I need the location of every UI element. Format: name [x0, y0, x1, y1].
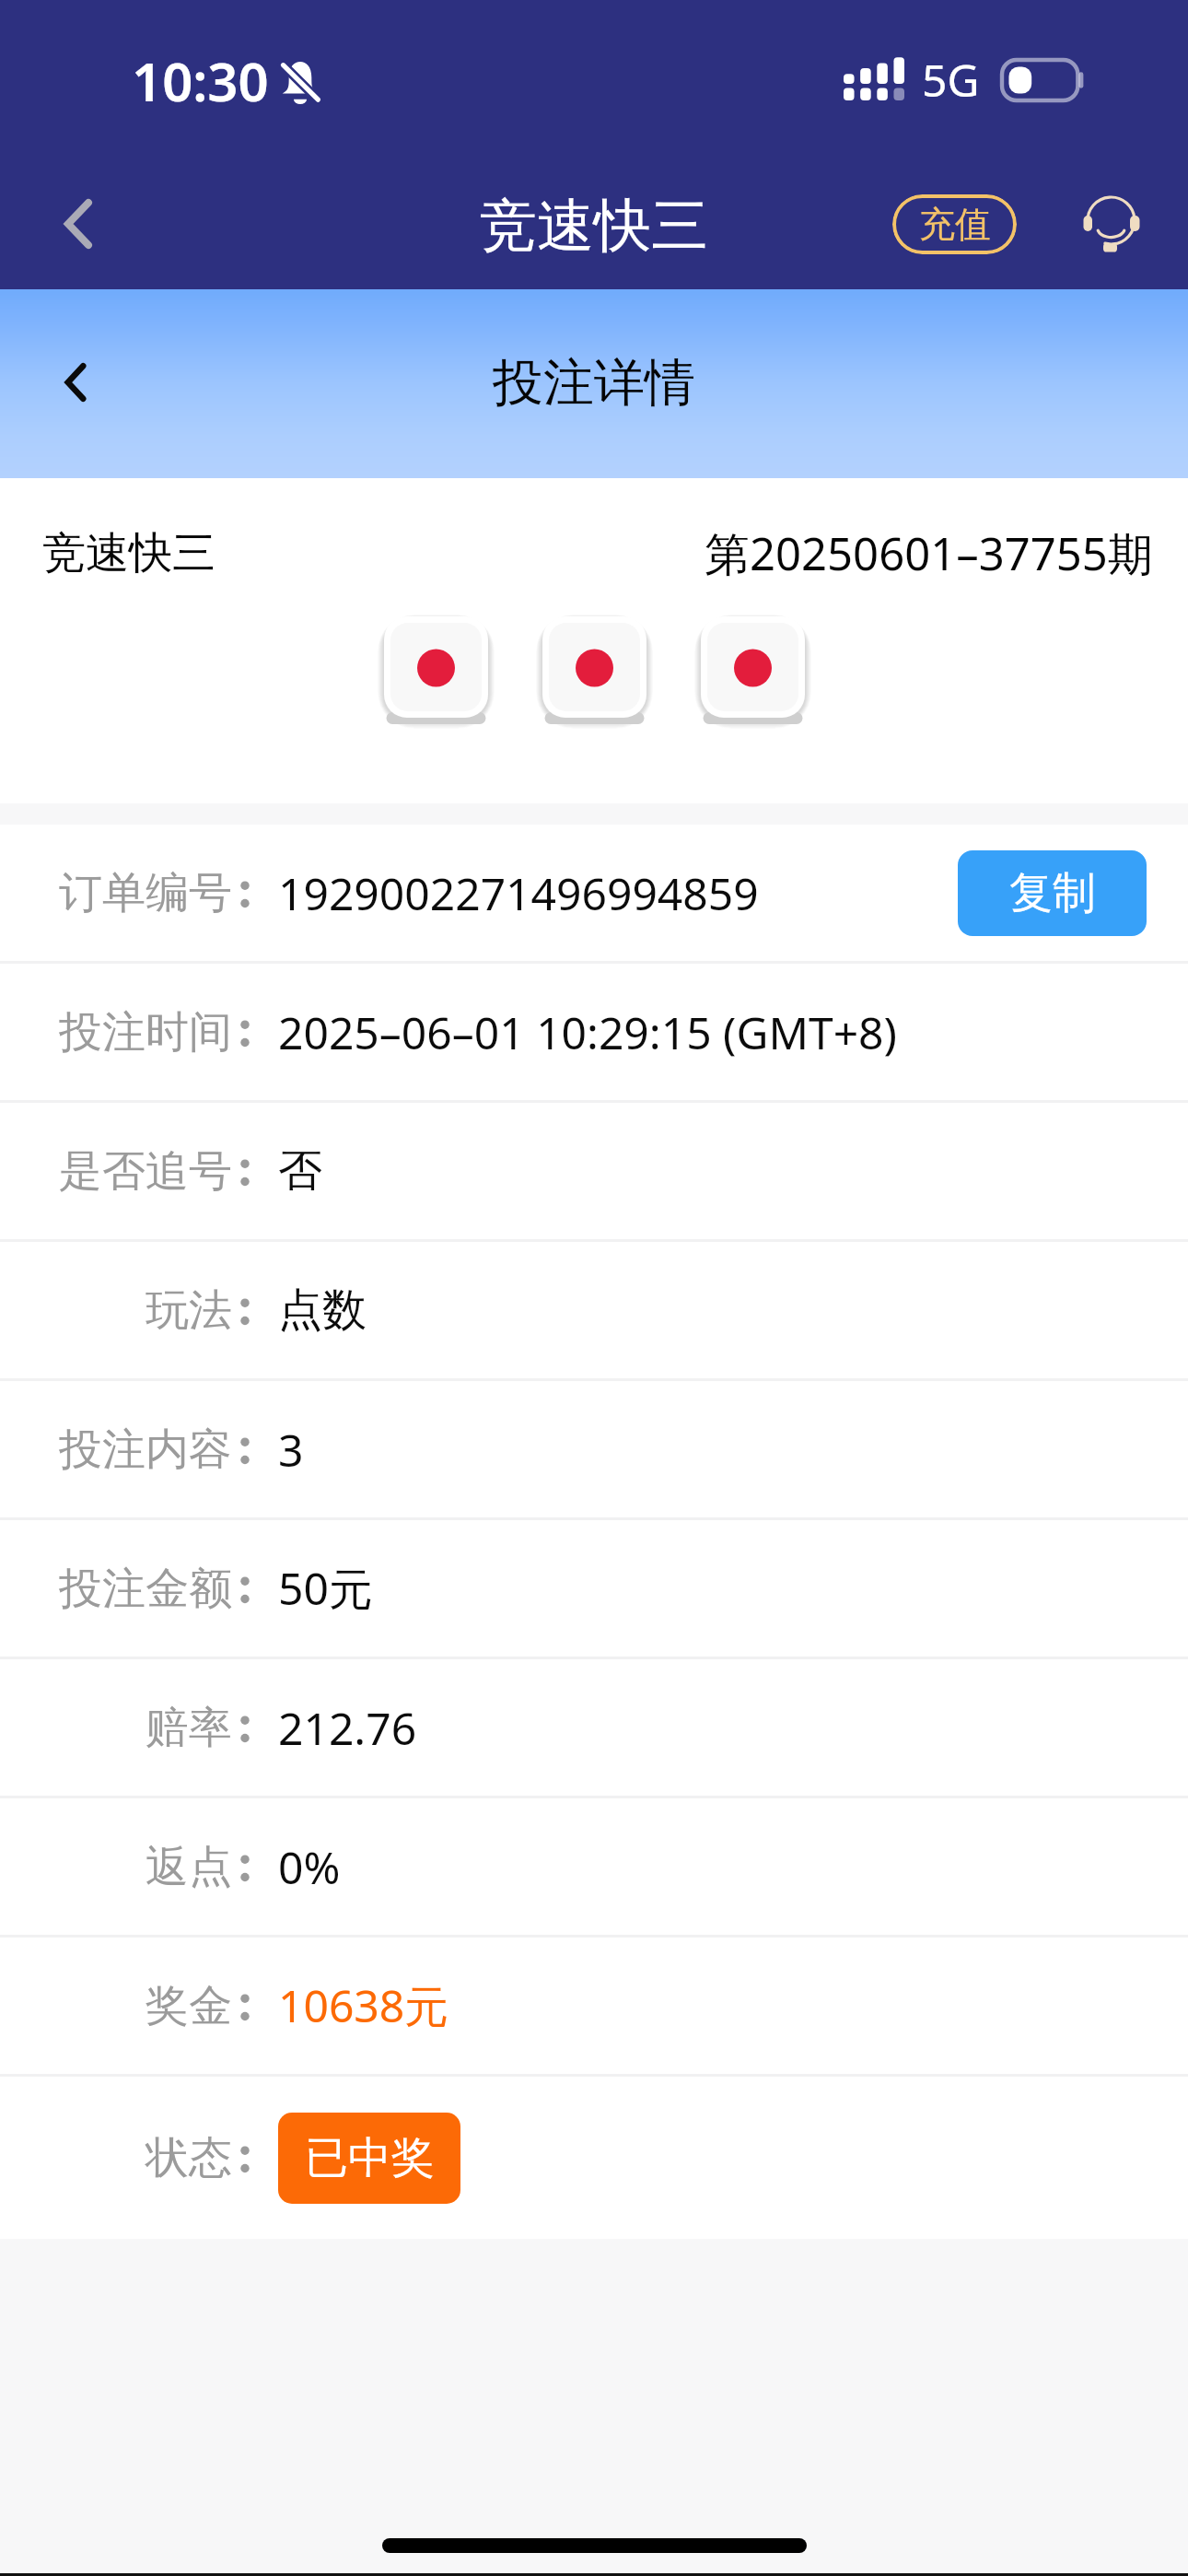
- staticText: 5G: [922, 50, 980, 110]
- button[interactable]: 复制: [958, 850, 1147, 936]
- button[interactable]: 已中奖: [278, 2113, 460, 2204]
- staticText: 返点: [53, 1840, 232, 1894]
- button[interactable]: Back: [28, 173, 129, 275]
- button[interactable]: 充值: [892, 194, 1017, 254]
- staticText: 第20250601–37755期: [705, 522, 1153, 584]
- staticText: 奖金: [53, 1979, 232, 2033]
- staticText: 2025–06–01 10:29:15 (GMT+8): [278, 1002, 897, 1062]
- staticText: 50元: [278, 1558, 373, 1619]
- staticText: 竞速快三: [480, 190, 708, 262]
- staticText: 0%: [278, 1837, 341, 1897]
- staticText: 投注时间: [53, 1005, 232, 1060]
- button[interactable]: Back: [25, 332, 126, 433]
- staticText: 复制: [1009, 866, 1096, 920]
- staticText: 状态: [53, 2131, 232, 2185]
- button[interactable]: Customer service: [1077, 192, 1144, 256]
- staticText: 点数: [278, 1282, 367, 1338]
- staticText: 1929002271496994859: [278, 863, 759, 923]
- staticText: 投注金额: [53, 1562, 232, 1616]
- staticText: 是否追号: [53, 1144, 232, 1199]
- staticText: 否: [278, 1143, 322, 1199]
- staticText: 充值: [919, 202, 991, 247]
- staticText: 玩法: [53, 1283, 232, 1338]
- staticText: 3: [278, 1420, 304, 1480]
- staticText: 10638元: [278, 1975, 449, 2036]
- staticText: 竞速快三: [42, 526, 215, 580]
- staticText: 赔率: [53, 1701, 232, 1755]
- staticText: 订单编号: [53, 866, 232, 920]
- staticText: 投注内容: [53, 1423, 232, 1477]
- staticText: 已中奖: [305, 2131, 435, 2185]
- staticText: 投注详情: [493, 351, 695, 415]
- staticText: 212.76: [278, 1698, 417, 1758]
- staticText: 10:30: [132, 44, 269, 117]
